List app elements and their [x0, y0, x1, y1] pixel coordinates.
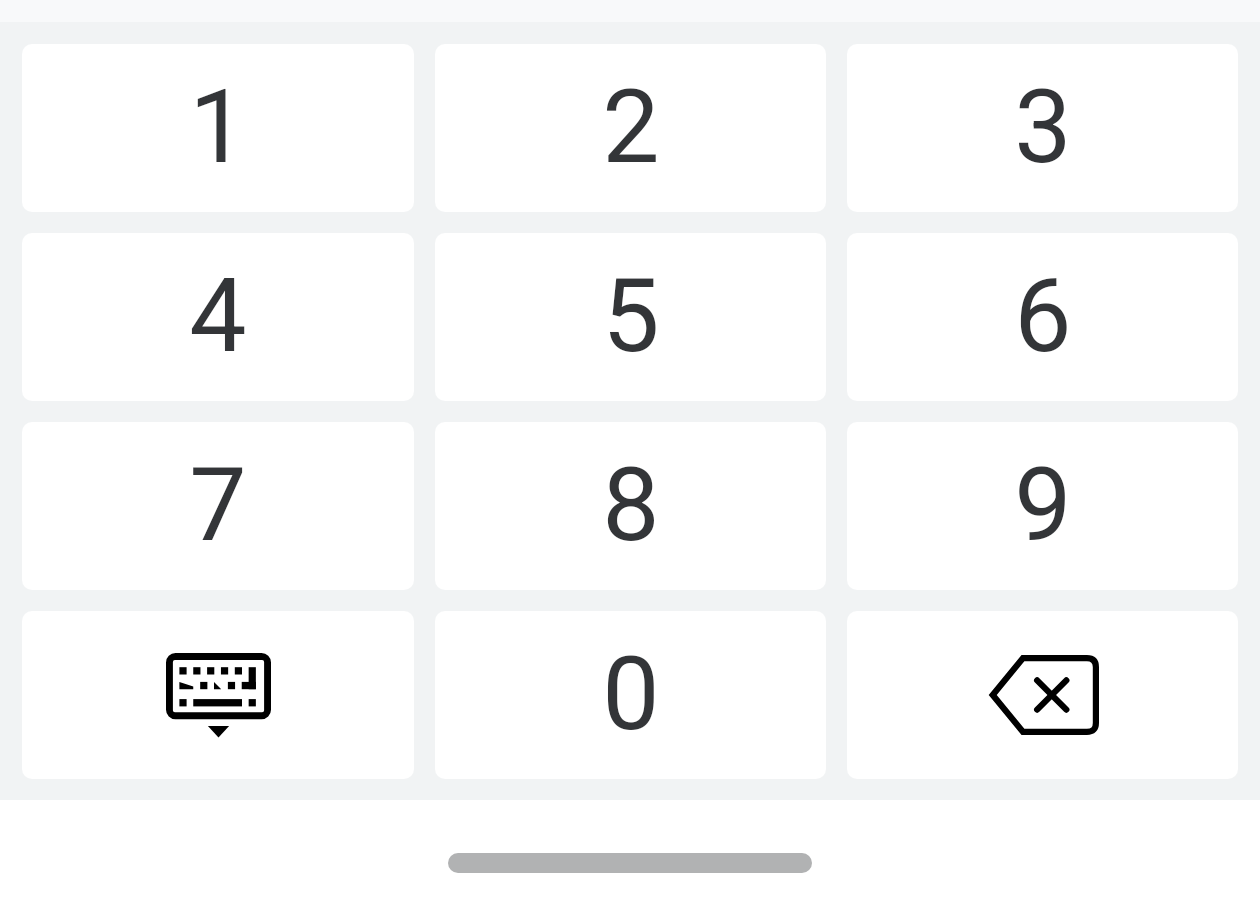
button[interactable]: 3 — [847, 44, 1238, 212]
staticText: 1 — [189, 67, 247, 187]
button[interactable]: 2 — [435, 44, 826, 212]
staticText: 5 — [602, 256, 660, 376]
staticText: 0 — [602, 634, 660, 754]
button[interactable]: 6 — [847, 233, 1238, 401]
staticText: 8 — [602, 445, 660, 565]
staticText: 3 — [1014, 67, 1072, 187]
staticText: 7 — [189, 445, 247, 565]
button[interactable]: 1 — [22, 44, 414, 212]
staticText: 2 — [602, 67, 660, 187]
button[interactable]: Backspace — [847, 611, 1238, 779]
button[interactable]: Hide keyboard — [22, 611, 414, 779]
button[interactable]: 7 — [22, 422, 414, 590]
button[interactable]: 0 — [435, 611, 826, 779]
button[interactable]: 9 — [847, 422, 1238, 590]
button[interactable]: 4 — [22, 233, 414, 401]
staticText: 4 — [189, 256, 247, 376]
button[interactable]: 5 — [435, 233, 826, 401]
staticText: 9 — [1014, 445, 1072, 565]
staticText: 6 — [1014, 256, 1072, 376]
button[interactable]: 8 — [435, 422, 826, 590]
